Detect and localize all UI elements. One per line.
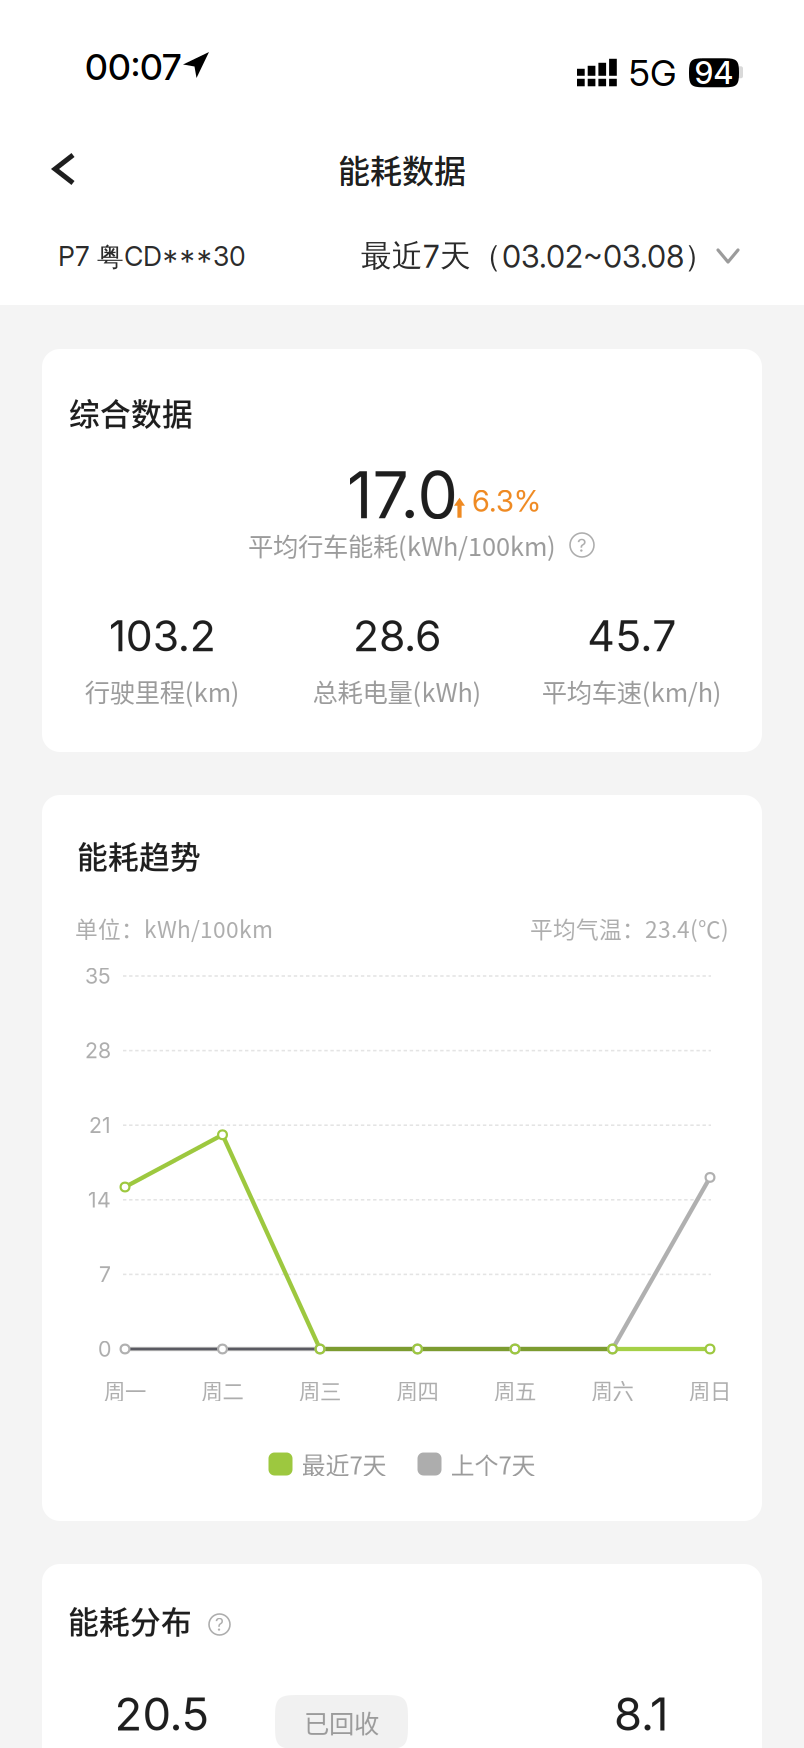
staticText: 综合数据 — [69, 390, 193, 434]
staticText: 45.7 — [587, 610, 676, 662]
staticText: 总耗电量(kWh) — [312, 673, 481, 709]
staticText: 最近7天（03.02~03.08） — [361, 237, 715, 275]
staticText: 5G — [629, 51, 676, 95]
staticText: 能耗分布 — [68, 1598, 192, 1642]
staticText: 周日 — [689, 1375, 731, 1405]
staticText: 0 — [98, 1336, 111, 1362]
staticText: 单位：kWh/100km — [75, 912, 273, 944]
staticText: 14 — [88, 1187, 111, 1213]
staticText: 周四 — [396, 1375, 438, 1405]
staticText: 最近7天 — [301, 1447, 386, 1481]
staticText: 103.2 — [109, 610, 216, 662]
staticText: 6.3% — [472, 483, 541, 519]
staticText: 平均气温：23.4(℃) — [530, 912, 729, 944]
staticText: 94 — [694, 54, 733, 91]
staticText: 28.6 — [353, 610, 441, 662]
staticText: 上个7天 — [450, 1447, 535, 1481]
staticText: 20.5 — [114, 1687, 209, 1741]
staticText: 周六 — [591, 1375, 633, 1405]
staticText: 17.0 — [346, 456, 457, 534]
staticText: P7 粤CD***30 — [58, 240, 246, 274]
staticText: 7 — [99, 1261, 111, 1287]
staticText: 21 — [89, 1112, 111, 1138]
staticText: 周三 — [299, 1375, 341, 1405]
staticText: 28 — [85, 1038, 111, 1063]
staticText: 能耗趋势 — [77, 833, 201, 877]
button[interactable]: Back — [32, 137, 96, 201]
staticText: ? — [577, 534, 587, 556]
staticText: 平均车速(km/h) — [542, 673, 722, 709]
staticText: 能耗数据 — [338, 146, 466, 192]
staticText: 35 — [85, 963, 111, 989]
staticText: 00:07 — [85, 45, 181, 89]
staticText: ? — [215, 1614, 224, 1635]
staticText: 已回收 — [304, 1704, 379, 1740]
staticText: 周一 — [104, 1375, 146, 1405]
button[interactable]: 最近7天（03.02~03.08） — [361, 234, 740, 278]
staticText: 平均行车能耗(kWh/100km) — [248, 527, 556, 563]
staticText: 行驶里程(km) — [85, 673, 240, 709]
staticText: 周二 — [201, 1375, 243, 1405]
staticText: 周五 — [494, 1375, 536, 1405]
staticText: 8.1 — [614, 1687, 668, 1741]
